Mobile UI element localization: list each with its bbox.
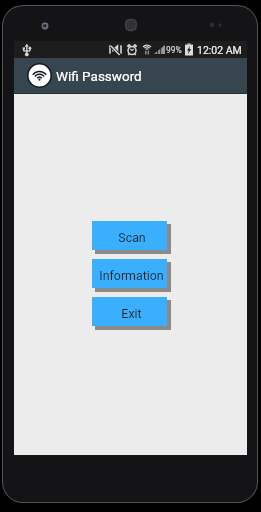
staticText: Wifi Password — [56, 68, 142, 84]
button[interactable]: Scan — [92, 221, 171, 254]
staticText: Scan — [118, 230, 146, 245]
button[interactable]: Exit — [92, 297, 171, 330]
staticText: 12:02 AM — [197, 44, 242, 56]
button[interactable]: Information — [92, 259, 171, 292]
staticText: Information — [99, 268, 164, 283]
staticText: Exit — [121, 306, 142, 321]
staticText: 99% — [166, 45, 182, 55]
